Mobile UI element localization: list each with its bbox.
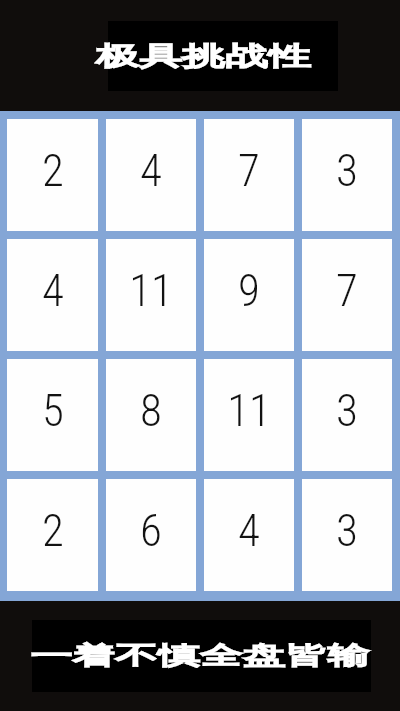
staticText: 3: [336, 384, 358, 437]
button[interactable]: 11: [204, 359, 294, 471]
staticText: 11: [227, 384, 271, 437]
button[interactable]: 一着不慎全盘皆输: [0, 601, 400, 711]
button[interactable]: 2: [7, 479, 98, 591]
staticText: 4: [140, 144, 162, 197]
staticText: 4: [42, 264, 64, 317]
button[interactable]: 4: [7, 239, 98, 351]
button[interactable]: 4: [204, 479, 294, 591]
button[interactable]: 6: [106, 479, 196, 591]
staticText: 9: [238, 264, 260, 317]
staticText: 5: [42, 384, 64, 437]
staticText: 2: [42, 504, 64, 557]
button[interactable]: 7: [204, 119, 294, 231]
button[interactable]: 8: [106, 359, 196, 471]
button[interactable]: 3: [302, 359, 392, 471]
staticText: 一着不慎全盘皆输: [30, 641, 370, 672]
staticText: 11: [129, 264, 173, 317]
button[interactable]: 4: [106, 119, 196, 231]
staticText: 6: [140, 504, 162, 557]
staticText: 8: [140, 384, 162, 437]
button[interactable]: 极具挑战性: [0, 0, 400, 111]
button[interactable]: 2: [7, 119, 98, 231]
staticText: 3: [336, 144, 358, 197]
button[interactable]: 5: [7, 359, 98, 471]
button[interactable]: 7: [302, 239, 392, 351]
button[interactable]: 3: [302, 119, 392, 231]
staticText: 2: [42, 144, 64, 197]
staticText: 7: [238, 144, 260, 197]
button[interactable]: 9: [204, 239, 294, 351]
staticText: 4: [238, 504, 260, 557]
button[interactable]: 3: [302, 479, 392, 591]
staticText: 7: [336, 264, 358, 317]
staticText: 极具挑战性: [96, 41, 311, 73]
staticText: 3: [336, 504, 358, 557]
button[interactable]: 11: [106, 239, 196, 351]
